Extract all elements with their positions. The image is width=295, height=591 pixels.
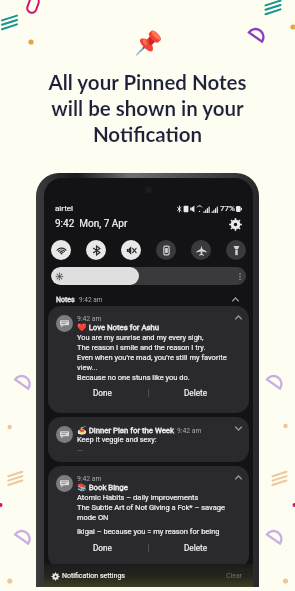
button[interactable]: 🍝 Dinner Plan for the Week [48,417,249,462]
staticText: Done [93,543,112,553]
staticText: ❤️ Love Notes for Ashu [77,323,160,332]
staticText: All your Pinned Notes will be shown in y… [48,70,247,147]
button[interactable]: Settings [228,217,242,231]
button[interactable]: Delete [149,541,242,555]
staticText: 77% [220,204,235,213]
button[interactable]: Collapse [230,295,241,304]
button[interactable]: Auto rotate [156,240,176,260]
staticText: 🍝 Dinner Plan for the Week [77,426,174,435]
button[interactable]: Flashlight [226,240,246,260]
staticText: Notes [56,296,75,304]
staticText: 9:42 am [77,315,102,323]
staticText: airtel [55,204,74,213]
button[interactable]: Done [56,541,148,555]
button[interactable]: Delete [149,386,242,400]
staticText: Atomic Habits – daily improvements The S… [77,493,225,521]
staticText: 📌 [134,30,162,57]
button[interactable]: Done [56,386,148,400]
staticText: Delete [184,388,208,398]
staticText: ... [77,444,83,453]
staticText: 9:42 Mon, 7 Apr [55,218,128,230]
staticText: 9:42 am [77,475,102,483]
staticText: 📚 Book Binge [77,483,128,492]
button[interactable]: Mute [121,240,141,260]
staticText: Delete [184,543,208,553]
button[interactable]: Airplane mode [191,240,211,260]
button[interactable]: 9:42 am [48,306,249,413]
staticText: Clear [226,572,243,580]
button[interactable]: Bluetooth [86,240,106,260]
button[interactable]: Wi-Fi [51,240,71,260]
button[interactable]: Clear [224,569,245,583]
staticText: Done [93,388,112,398]
button[interactable]: 9:42 am [48,466,249,568]
staticText: You are my sunrise and my every sigh, Th… [77,333,227,381]
staticText: Keep it veggie and sexy: [77,435,157,444]
staticText: Ikigai – because you = my reason for bei… [77,527,220,536]
staticText: 9:42 am [79,296,103,304]
button[interactable]: Notification settings [52,569,125,583]
button[interactable]: Brightness [51,267,246,285]
staticText: Notification settings [62,572,125,580]
staticText: 9:42 am [177,427,202,435]
